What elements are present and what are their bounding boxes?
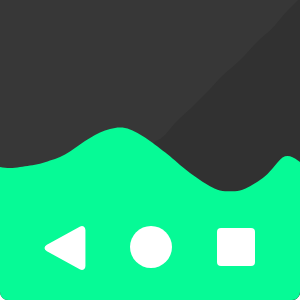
button[interactable]: Stop [217,228,255,266]
button[interactable]: Record [130,226,172,268]
button[interactable]: Previous track [46,226,84,270]
